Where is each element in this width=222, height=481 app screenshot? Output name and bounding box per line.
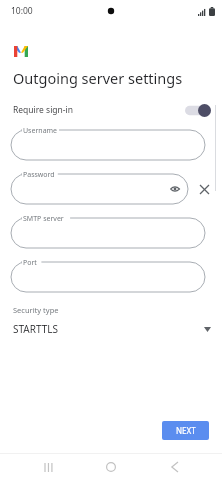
staticText: Security type xyxy=(13,305,59,315)
button[interactable]: Port xyxy=(11,262,205,292)
button[interactable]: Security type xyxy=(0,305,222,336)
staticText: NEXT xyxy=(176,425,196,436)
staticText: Port xyxy=(23,258,37,268)
button[interactable]: Password xyxy=(11,174,188,204)
button[interactable]: Require sign-in xyxy=(0,100,222,120)
button[interactable]: NEXT xyxy=(162,421,209,440)
button[interactable]: Home xyxy=(96,453,126,481)
staticText: Username xyxy=(23,126,58,136)
button[interactable]: Back xyxy=(159,453,189,481)
button[interactable]: Clear password xyxy=(195,180,213,198)
button[interactable]: Username xyxy=(11,130,205,160)
staticText: Password xyxy=(23,170,55,180)
staticText: Require sign-in xyxy=(13,104,74,116)
staticText: STARTTLS xyxy=(13,322,59,336)
staticText: Outgoing server settings xyxy=(13,68,183,88)
staticText: 10:00 xyxy=(11,5,33,17)
button[interactable]: Recent apps xyxy=(33,453,63,481)
button[interactable]: SMTP server xyxy=(11,218,205,248)
other: Show password xyxy=(170,184,180,194)
staticText: SMTP server xyxy=(23,214,64,224)
